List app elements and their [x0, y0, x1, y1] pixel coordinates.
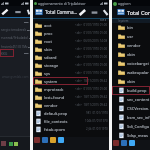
- button[interactable]: Edit: [1, 8, 9, 16]
- button[interactable]: Sdsp_measure: [112, 131, 150, 140]
- button[interactable]: Total Commander: [35, 8, 43, 16]
- staticText: xbin: [127, 79, 136, 84]
- button[interactable]: KKG: [0, 50, 30, 57]
- staticText: aggiorn: [118, 1, 131, 6]
- button[interactable]: vendor: [33, 101, 109, 109]
- button[interactable]: xbin: [112, 50, 150, 59]
- button[interactable]: Layout: [14, 8, 22, 16]
- staticText: voicebargeindic: [127, 61, 150, 66]
- button[interactable]: rsonrak/9rbuladol: [0, 34, 30, 42]
- staticText: wakeupalarm: [127, 70, 150, 75]
- staticText: 2,6k 01/01/1970: [86, 127, 108, 131]
- button[interactable]: CSCVersion.txt: [112, 104, 150, 113]
- button[interactable]: sbin: [33, 45, 109, 53]
- button[interactable]: wakeupalarm: [112, 68, 150, 77]
- staticText: storage: [44, 63, 59, 68]
- button[interactable]: storage: [33, 61, 109, 69]
- staticText: vendor: [44, 103, 58, 108]
- button[interactable]: Edit: [78, 8, 87, 17]
- button[interactable]: Windows: [129, 140, 135, 146]
- staticText: <dir> 01/01/1970 01:00: [75, 55, 108, 59]
- button[interactable]: Browser: [42, 137, 48, 143]
- staticText: aggiornamento di TripAdvisor: [38, 1, 86, 6]
- button[interactable]: Browser: [121, 140, 127, 146]
- staticText: sdcard: [44, 55, 57, 60]
- button[interactable]: Sdi_Configurat: [112, 122, 150, 131]
- staticText: bin: [127, 25, 133, 30]
- staticText: sec_contents: [127, 97, 150, 102]
- staticText: proc: [44, 31, 53, 36]
- staticText: <dir> 01/01/1970 01:00: [75, 31, 108, 35]
- button[interactable]: usr: [112, 32, 150, 41]
- staticText: <dir> 18/11/2015 09:42: [75, 103, 108, 107]
- button[interactable]: bsm_sec_info: [112, 113, 150, 122]
- staticText: www.gsmlab.com: [2, 75, 29, 79]
- staticText: sbin: [44, 47, 52, 52]
- staticText: <dir> 18/11/2015 09:42: [75, 95, 108, 99]
- button[interactable]: vendor: [112, 41, 150, 50]
- button[interactable]: build.prop: [112, 86, 150, 95]
- button[interactable]: bin: [112, 23, 150, 32]
- button[interactable]: acct: [33, 21, 109, 29]
- staticText: acct: [44, 23, 52, 28]
- button[interactable]: proc: [33, 29, 109, 37]
- staticText: system: [44, 79, 58, 84]
- staticText: 981 01/01/1970: [86, 111, 108, 115]
- staticText: CSCVersion.txt: [127, 106, 150, 111]
- staticText: 0/14: [100, 19, 107, 21]
- button[interactable]: sys: [33, 69, 109, 77]
- staticText: <dir> 01/01/1970 01:00: [75, 87, 108, 91]
- staticText: root: [44, 39, 52, 44]
- staticText: <dir> 01/01/1970 01:00: [75, 23, 108, 27]
- button[interactable]: sdcard: [33, 53, 109, 61]
- button[interactable]: root: [33, 37, 109, 45]
- staticText: xbin: [127, 52, 136, 57]
- button[interactable]: default.prop: [33, 109, 109, 117]
- button[interactable]: file_contexts: [33, 117, 109, 125]
- staticText: KKG: [1, 52, 8, 56]
- staticText: Total Comma...: [45, 9, 78, 15]
- button[interactable]: sec_contents: [112, 95, 150, 104]
- button[interactable]: [0, 18, 30, 26]
- staticText: <dir> 01/01/1970 01:00: [75, 63, 108, 67]
- button[interactable]: Total Commander: [117, 8, 125, 16]
- button[interactable]: system: [33, 77, 109, 85]
- staticText: <dir> 01/01/1970 01:00: [75, 71, 108, 75]
- staticText: <dir> 01/01/1970 01:00: [75, 47, 108, 51]
- staticText: bsm_sec_info: [127, 115, 150, 120]
- button[interactable]: Recents: [34, 137, 40, 143]
- staticText: vendor: [127, 43, 141, 48]
- button[interactable]: Recents: [113, 140, 119, 146]
- button[interactable]: sergio tenabresk: [0, 26, 30, 34]
- staticText: sys: [44, 71, 50, 76]
- button[interactable]: Settings: [102, 8, 109, 17]
- staticText: Sdsp_measure: [127, 133, 150, 138]
- button[interactable]: mprotrack: [33, 85, 109, 93]
- staticText: build.prop: [127, 88, 147, 93]
- staticText: Total Comm: [127, 9, 150, 16]
- staticText: /system: [118, 19, 129, 23]
- button[interactable]: lost+found: [33, 93, 109, 101]
- staticText: rsonrak/9rbuladol: [1, 36, 29, 40]
- staticText: file_contexts: [44, 119, 68, 124]
- button[interactable]: voicebargeindic: [112, 59, 150, 68]
- staticText: mprotrack: [44, 87, 64, 92]
- staticText: lost+found: [44, 95, 65, 100]
- button[interactable]: Layout: [90, 8, 99, 17]
- button[interactable]: xbin: [112, 77, 150, 86]
- button[interactable]: fstab.qcom: [33, 125, 109, 133]
- staticText: 104k 01/01/1970: [85, 119, 108, 123]
- button[interactable]: Files: [50, 137, 56, 143]
- staticText: <dir> 18/11/2015 09:42: [75, 79, 108, 83]
- staticText: sergio tenabresk: [1, 28, 27, 32]
- button[interactable]: Settings: [27, 8, 30, 16]
- staticText: usr: [127, 34, 134, 39]
- staticText: fstab.qcom: [44, 127, 66, 132]
- staticText: <dir> 06/01/2015 14:08: [75, 39, 108, 43]
- staticText: default.prop: [44, 111, 68, 116]
- button[interactable]: Windows: [58, 137, 64, 143]
- staticText: hnziesk451351Mz: [1, 45, 28, 49]
